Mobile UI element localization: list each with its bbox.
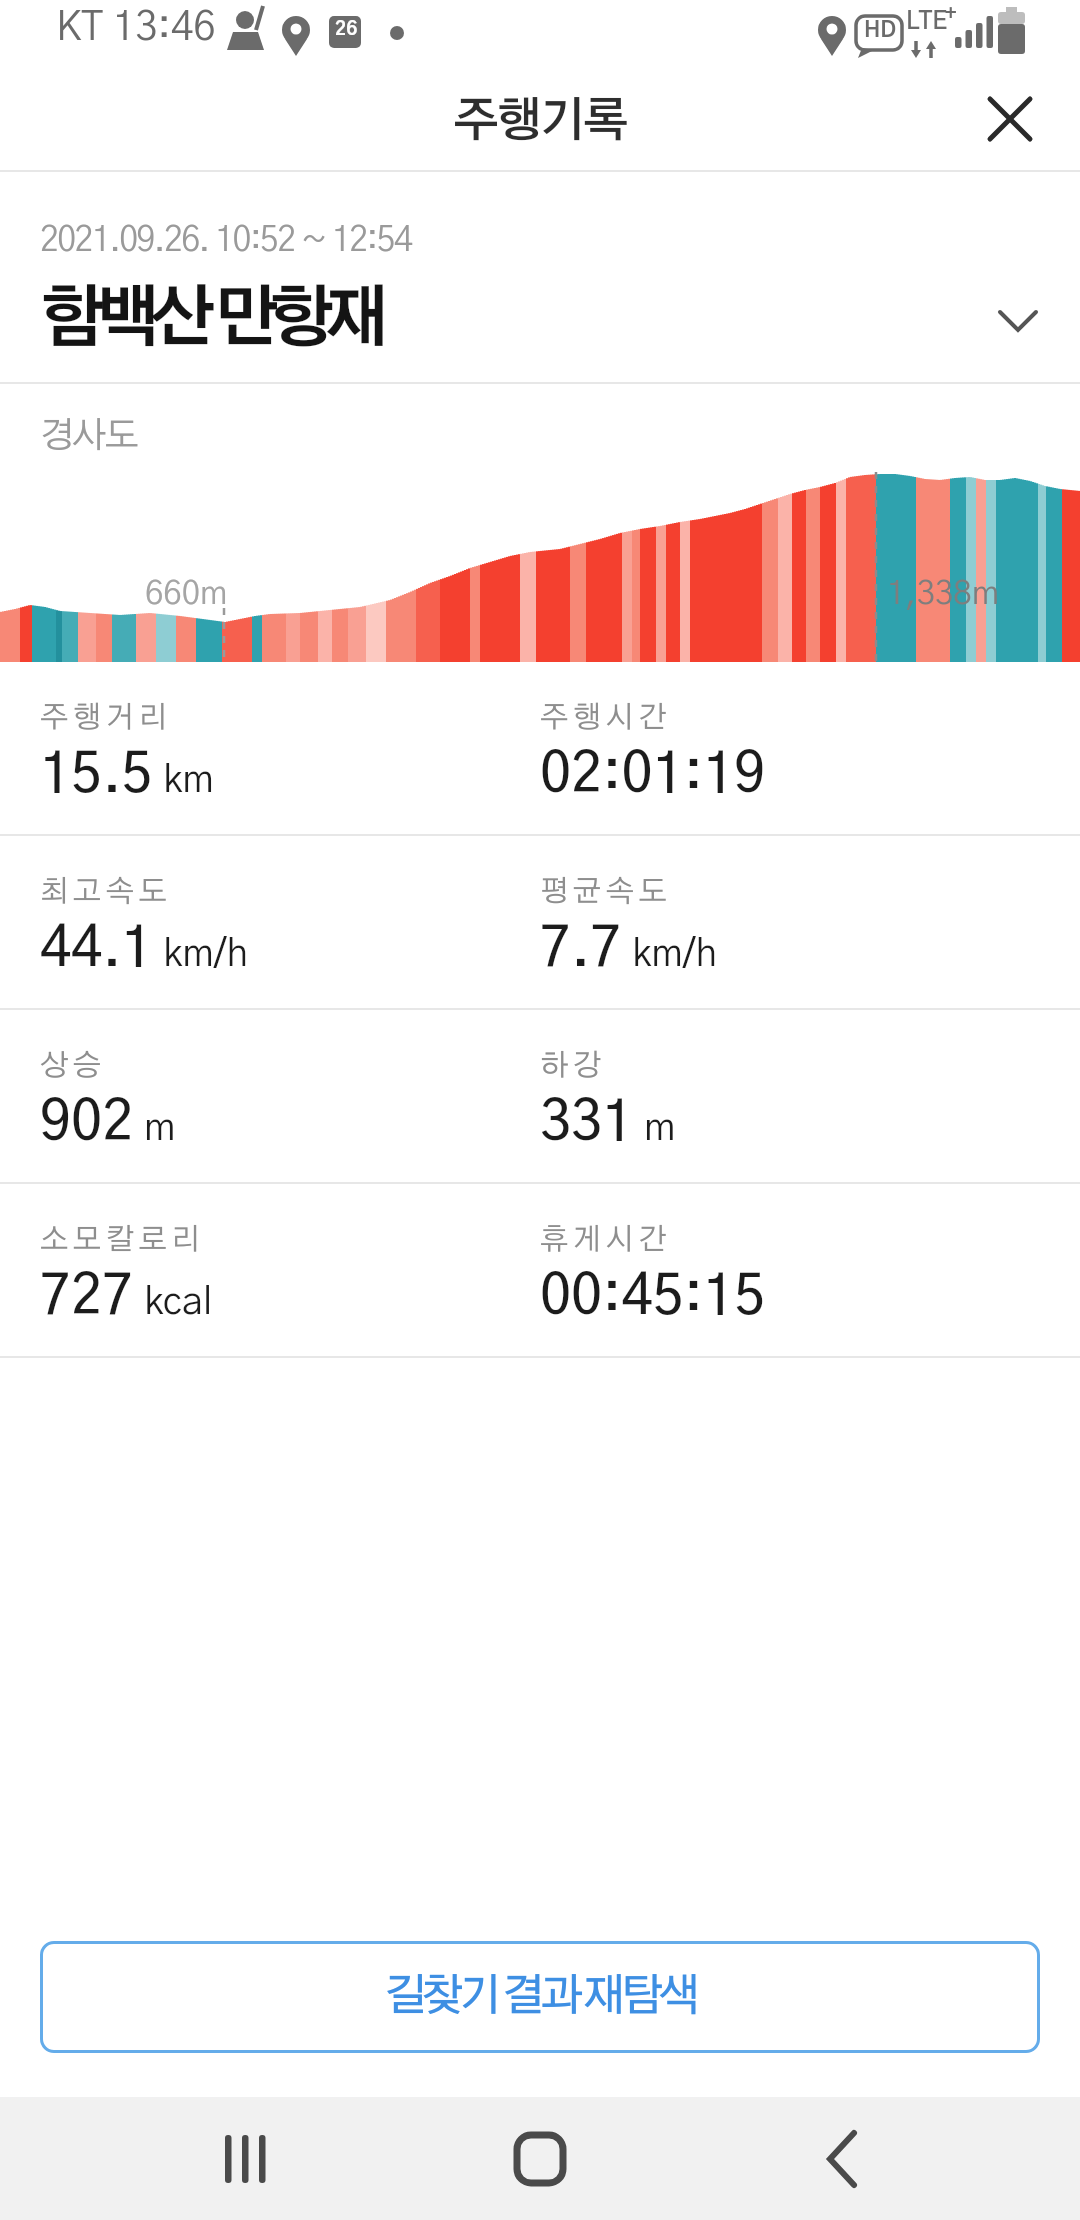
staticText: 평균속도 [540, 877, 672, 907]
staticText: 02:01:19 [540, 748, 766, 803]
staticText: 44.1 [40, 922, 153, 977]
staticText: HD [864, 19, 897, 41]
staticText: 7.7 [540, 922, 622, 977]
staticText: 최고속도 [40, 877, 172, 907]
staticText: 727 [40, 1270, 134, 1325]
staticText: + [945, 4, 957, 24]
staticText: m [644, 1110, 676, 1148]
staticText: 주행시간 [540, 703, 672, 733]
staticText: 길찾기 결과 재탐색 [384, 1975, 696, 2019]
staticText: 902 [40, 1096, 134, 1151]
button[interactable]: 길찾기 결과 재탐색 [40, 1941, 1040, 2053]
button[interactable] [984, 93, 1036, 145]
staticText: LTE [906, 10, 948, 34]
staticText: km [163, 762, 214, 800]
staticText: m [144, 1110, 176, 1148]
staticText: 1,338m [887, 578, 1000, 611]
staticText: 상승 [40, 1051, 106, 1081]
button[interactable] [492, 2111, 588, 2207]
staticText: 00:45:15 [540, 1270, 766, 1325]
staticText: kcal [144, 1284, 213, 1322]
staticText: 331 [540, 1096, 634, 1151]
staticText: 주행거리 [40, 703, 172, 733]
staticText: 15.5 [40, 748, 153, 803]
staticText: km/h [632, 936, 718, 974]
staticText: 경사도 [40, 418, 137, 454]
staticText: km/h [163, 936, 249, 974]
staticText: 함백산 만항재 [40, 287, 380, 353]
button[interactable] [197, 2111, 293, 2207]
button[interactable] [794, 2111, 890, 2207]
staticText: 소모칼로리 [40, 1225, 205, 1255]
staticText: KT 13:46 [56, 8, 216, 48]
staticText: 26 [335, 20, 358, 39]
staticText: 2021.09.26. 10:52 ~ 12:54 [40, 224, 412, 258]
staticText: 휴게시간 [540, 1225, 672, 1255]
staticText: 660m [145, 578, 228, 611]
button[interactable]: 함백산 만항재 [40, 274, 1040, 366]
staticText: 주행기록 [453, 99, 627, 146]
staticText: 하강 [540, 1051, 606, 1081]
